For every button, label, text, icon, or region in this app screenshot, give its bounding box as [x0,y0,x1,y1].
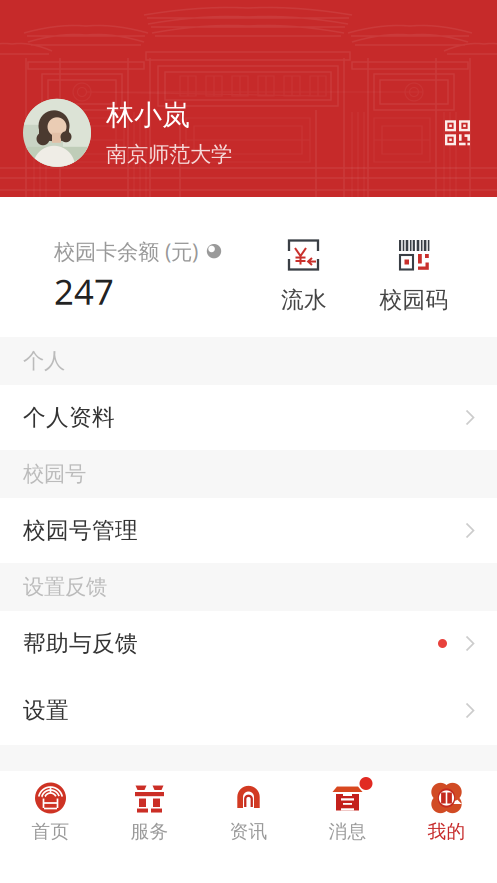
button[interactable]: 首页 [1,771,100,883]
button[interactable]: 我的 [397,771,496,883]
button[interactable]: 设置 [0,676,497,745]
button[interactable]: 服务 [100,771,199,883]
staticText: 个人资料 [23,404,115,431]
button[interactable]: 校园号管理 [0,498,497,563]
staticText: 设置 [23,697,69,724]
staticText: 流水 [281,286,327,314]
button[interactable]: 资讯 [199,771,298,883]
staticText: 设置反馈 [23,574,107,600]
button[interactable]: 流水 [268,237,340,314]
staticText: 服务 [130,820,168,843]
button[interactable]: 消息 [298,771,397,883]
staticText: 校园卡余额 (元) [54,237,198,265]
staticText: 资讯 [229,820,267,843]
button[interactable]: 校园码 [378,237,450,314]
staticText: 校园码 [379,286,448,314]
staticText: 校园号管理 [23,517,138,544]
staticText: 帮助与反馈 [23,630,138,657]
staticText: 个人 [23,348,65,374]
staticText: 林小岚 [106,98,190,132]
staticText: 校园号 [23,461,86,487]
staticText: 我的 [427,820,465,843]
button[interactable]: 个人资料 [0,385,497,450]
button[interactable]: Profile photo [23,99,91,167]
staticText: 首页 [31,820,69,843]
staticText: 消息 [328,820,366,843]
staticText: 247 [54,268,114,314]
button[interactable]: Scan QR code [439,114,476,151]
button[interactable]: 帮助与反馈 [0,611,497,676]
staticText: 南京师范大学 [106,141,232,168]
